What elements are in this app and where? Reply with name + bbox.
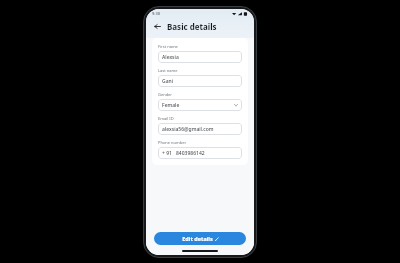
staticText: Edit details [182,235,213,242]
button[interactable]: Gani [158,75,242,87]
button[interactable]: Edit details [154,232,246,245]
staticText: 9:30 [152,11,160,16]
staticText: Female [162,102,180,109]
button[interactable]: alexsia56@gmail.com [158,123,242,135]
button[interactable]: + 91 [158,147,242,159]
button[interactable]: Back [152,21,163,32]
staticText: Last name [158,68,178,73]
staticText: Email ID [158,116,174,121]
staticText: Basic details [167,21,217,32]
button[interactable]: Female [158,99,242,111]
staticText: Phone number [158,140,187,145]
staticText: Gani [162,78,173,85]
staticText: Alexsia [162,54,179,61]
staticText: Gender [158,92,173,97]
staticText: 8403986142 [176,150,205,157]
staticText: First name [158,44,178,49]
staticText: + 91 [162,150,172,157]
button[interactable]: Alexsia [158,51,242,63]
staticText: alexsia56@gmail.com [162,126,214,133]
